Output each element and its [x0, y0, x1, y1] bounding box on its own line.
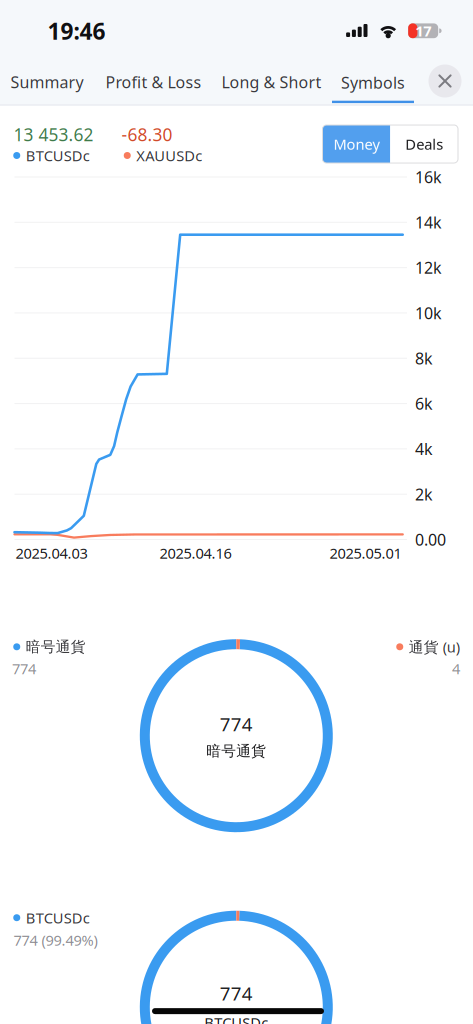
staticText: BTCUSDc — [26, 908, 90, 927]
staticText: 774 (99.49%) — [13, 930, 97, 950]
staticText: -68.30 — [121, 123, 172, 146]
staticText: Deals — [405, 134, 443, 154]
staticText: BTCUSDc — [26, 146, 90, 165]
staticText: 774 — [12, 659, 36, 678]
staticText: 暗号通貨 — [206, 742, 266, 760]
staticText: 4k — [415, 438, 433, 459]
staticText: 2025.04.16 — [159, 543, 231, 563]
staticText: Summary — [10, 71, 83, 93]
staticText: 16k — [415, 166, 442, 188]
staticText: 774 — [220, 981, 253, 1006]
staticText: 通貨 (u) — [409, 637, 460, 657]
button[interactable]: Profit & Loss — [101, 60, 205, 104]
staticText: Profit & Loss — [105, 71, 201, 93]
staticText: 6k — [415, 393, 433, 414]
staticText: 2k — [415, 484, 433, 505]
staticText: 2025.05.01 — [329, 543, 401, 563]
button[interactable]: Money — [322, 125, 390, 163]
staticText: 2025.04.03 — [15, 543, 87, 563]
staticText: 17 — [415, 21, 431, 41]
staticText: 13 453.62 — [13, 123, 93, 146]
staticText: 14k — [415, 212, 442, 233]
button[interactable]: Close — [423, 59, 467, 103]
staticText: 4 — [452, 659, 460, 678]
staticText: 774 — [220, 712, 253, 736]
button[interactable]: Symbols — [332, 61, 414, 104]
staticText: 19:46 — [47, 16, 105, 46]
staticText: Money — [333, 134, 379, 154]
button[interactable]: Summary — [6, 60, 88, 104]
staticText: XAUUSDc — [136, 146, 202, 165]
button[interactable]: Long & Short — [219, 60, 323, 104]
staticText: 10k — [415, 302, 442, 323]
staticText: Symbols — [341, 72, 405, 93]
staticText: 暗号通貨 — [26, 638, 86, 656]
button[interactable]: Deals — [390, 125, 458, 163]
staticText: 12k — [415, 257, 442, 278]
staticText: Long & Short — [221, 71, 321, 93]
staticText: 8k — [415, 348, 433, 369]
staticText: 0.00 — [415, 529, 446, 550]
staticText: BTCUSDc — [204, 1013, 268, 1024]
